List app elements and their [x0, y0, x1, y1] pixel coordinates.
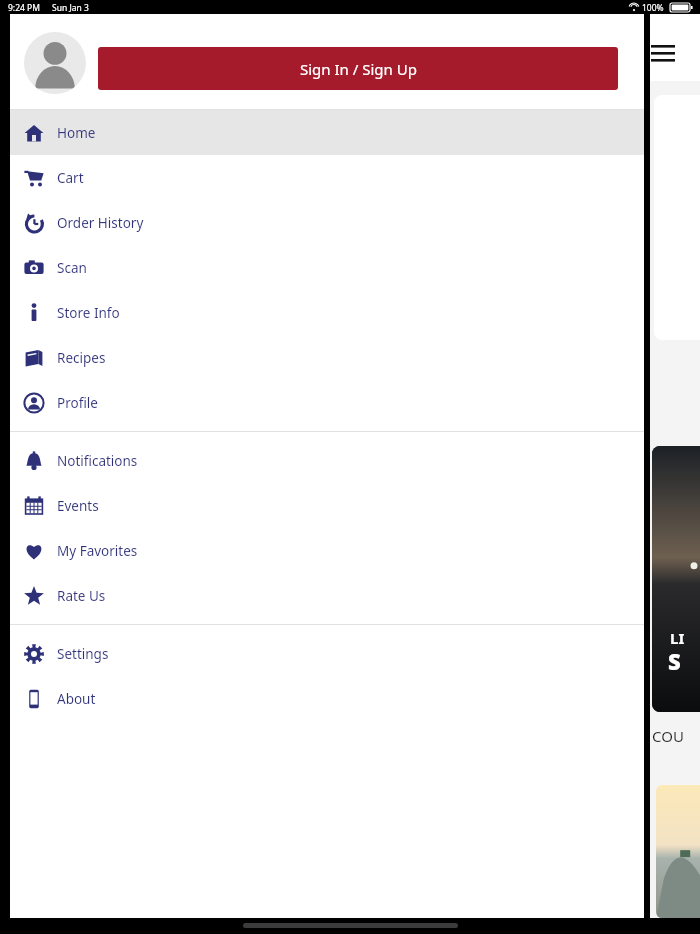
- staticText: About: [57, 690, 96, 708]
- staticText: Sign In / Sign Up: [300, 59, 417, 79]
- button[interactable]: My Favorites: [10, 528, 644, 573]
- staticText: My Favorites: [57, 542, 138, 560]
- button[interactable]: Sign In / Sign Up: [98, 47, 618, 90]
- staticText: S: [668, 646, 681, 676]
- button[interactable]: Events: [10, 483, 644, 528]
- button[interactable]: About: [10, 676, 644, 721]
- staticText: LI: [670, 628, 685, 648]
- button[interactable]: Recipes: [10, 335, 644, 380]
- staticText: Home: [57, 124, 96, 142]
- button[interactable]: Profile photo: [24, 32, 86, 94]
- staticText: Profile: [57, 394, 98, 412]
- button[interactable]: Profile: [10, 380, 644, 425]
- staticText: Scan: [57, 259, 87, 277]
- staticText: COU: [652, 726, 684, 746]
- button[interactable]: Open menu: [650, 14, 700, 81]
- button[interactable]: Home: [10, 110, 644, 155]
- staticText: Settings: [57, 645, 109, 663]
- staticText: Cart: [57, 169, 84, 187]
- button[interactable]: Rate Us: [10, 573, 644, 618]
- staticText: Order History: [57, 214, 144, 232]
- staticText: Notifications: [57, 452, 138, 470]
- staticText: 9:24 PM: [8, 2, 40, 14]
- button[interactable]: Scan: [10, 245, 644, 290]
- button[interactable]: Settings: [10, 631, 644, 676]
- button[interactable]: [656, 785, 700, 918]
- button[interactable]: Order History: [10, 200, 644, 245]
- staticText: Sun Jan 3: [52, 2, 89, 14]
- button[interactable]: Cart: [10, 155, 644, 200]
- staticText: Store Info: [57, 304, 120, 322]
- button[interactable]: Notifications: [10, 438, 644, 483]
- staticText: Recipes: [57, 349, 106, 367]
- button[interactable]: LI: [652, 446, 700, 712]
- button[interactable]: Store Info: [10, 290, 644, 335]
- staticText: Rate Us: [57, 587, 106, 605]
- staticText: 100%: [642, 2, 664, 14]
- staticText: Events: [57, 497, 99, 515]
